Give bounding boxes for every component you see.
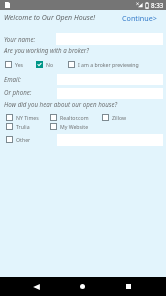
button[interactable]: My Website xyxy=(50,122,89,131)
staticText: Trulia xyxy=(16,123,30,130)
staticText: Your name: xyxy=(4,35,36,43)
staticText: Yes xyxy=(15,61,24,68)
staticText: No xyxy=(46,61,54,68)
staticText: NY Times xyxy=(16,114,39,121)
button[interactable]: Continue> xyxy=(120,11,159,25)
staticText: Or phone: xyxy=(4,88,32,96)
button[interactable]: I am a broker previewing xyxy=(68,60,139,69)
staticText: 8:33 xyxy=(151,1,164,9)
button[interactable]: Other xyxy=(6,135,31,144)
staticText: Are you working with a broker? xyxy=(4,46,89,54)
staticText: Continue> xyxy=(122,13,157,23)
staticText: Zillow xyxy=(112,114,127,121)
button[interactable]: Trulia xyxy=(6,122,30,131)
button[interactable]: No xyxy=(36,60,54,69)
staticText: How did you hear about our open house? xyxy=(4,100,118,108)
button[interactable]: Recent apps xyxy=(119,277,138,296)
staticText: Email: xyxy=(4,75,21,83)
staticText: Welcome to Our Open House! xyxy=(4,13,96,23)
staticText: Realtor.com xyxy=(60,114,89,121)
button[interactable]: Zillow xyxy=(102,113,127,122)
button[interactable]: Realtor.com xyxy=(50,113,89,122)
button[interactable]: NY Times xyxy=(6,113,39,122)
button[interactable]: Yes xyxy=(5,60,24,69)
button[interactable]: Back xyxy=(27,277,46,296)
staticText: Other xyxy=(16,136,31,143)
staticText: I am a broker previewing xyxy=(78,61,139,68)
staticText: My Website xyxy=(60,123,89,130)
button[interactable]: Home xyxy=(73,277,92,296)
